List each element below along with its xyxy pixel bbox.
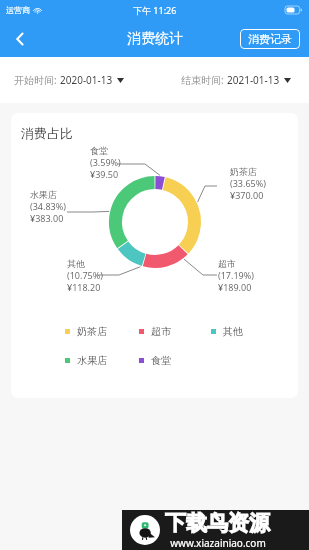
staticText: ¥39.50 (90, 168, 119, 180)
staticText: 水果店 (30, 189, 57, 200)
button[interactable]: 结束时间: (181, 73, 291, 87)
staticText: 超市 (151, 325, 171, 338)
staticText: 其他 (223, 325, 243, 338)
button[interactable]: 开始时间: (14, 73, 124, 87)
button[interactable]: 水果店 (65, 354, 107, 367)
staticText: 下午 11:26 (133, 4, 177, 16)
button[interactable]: 奶茶店 (65, 325, 107, 338)
staticText: ¥383.00 (30, 212, 64, 224)
staticText: 食堂 (151, 354, 171, 367)
staticText: 奶茶店 (230, 166, 257, 177)
staticText: (10.75%) (67, 269, 103, 281)
staticText: (34.83%) (30, 200, 66, 212)
staticText: ¥370.00 (230, 189, 264, 201)
staticText: 2020-01-13 (60, 73, 113, 87)
staticText: 消费记录 (248, 32, 292, 46)
button[interactable]: 消费记录 (240, 29, 300, 49)
staticText: 消费统计 (127, 30, 183, 48)
staticText: (33.65%) (230, 177, 266, 189)
button[interactable]: Back (0, 20, 40, 57)
button[interactable]: 食堂 (139, 354, 171, 367)
staticText: (3.59%) (90, 156, 121, 168)
staticText: 其他 (67, 258, 85, 269)
staticText: (17.19%) (218, 269, 254, 281)
staticText: 下载鸟资源 (165, 510, 270, 536)
staticText: www.xiazainiao.com (170, 536, 266, 550)
staticText: 水果店 (77, 354, 107, 367)
button[interactable]: 超市 (139, 325, 171, 338)
staticText: ¥189.00 (218, 281, 252, 293)
staticText: 结束时间: (181, 73, 224, 87)
staticText: 奶茶店 (77, 325, 107, 338)
staticText: 超市 (218, 258, 236, 269)
staticText: 消费占比 (21, 125, 73, 141)
button[interactable]: 其他 (211, 325, 243, 338)
staticText: 运营商 (6, 5, 30, 15)
staticText: ¥118.20 (67, 281, 101, 293)
staticText: 2021-01-13 (227, 73, 280, 87)
staticText: 食堂 (90, 145, 108, 156)
staticText: 开始时间: (14, 73, 57, 87)
